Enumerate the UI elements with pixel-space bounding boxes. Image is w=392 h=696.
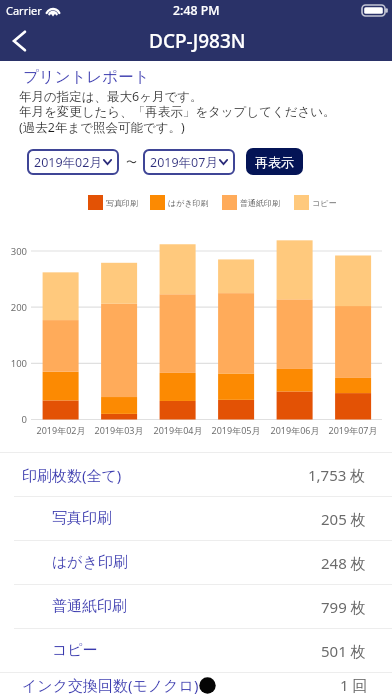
- staticText: 1,753 枚: [308, 465, 366, 485]
- staticText: DCP-J983N: [149, 28, 246, 54]
- button[interactable]: 2019年02月: [27, 149, 119, 175]
- button[interactable]: インク交換回数(モノクロ): [0, 673, 392, 696]
- button[interactable]: 普通紙印刷: [0, 585, 392, 628]
- staticText: コピー: [312, 198, 337, 208]
- staticText: 1 回: [340, 675, 368, 695]
- staticText: 2019年02月: [32, 424, 90, 436]
- staticText: 0: [0, 413, 27, 426]
- staticText: 2019年06月: [266, 424, 324, 436]
- button[interactable]: 再表示: [246, 148, 303, 175]
- staticText: はがき印刷: [168, 198, 209, 208]
- button[interactable]: コピー: [0, 629, 392, 672]
- staticText: 写真印刷: [52, 509, 112, 528]
- staticText: 100: [0, 357, 27, 370]
- staticText: 799 枚: [321, 597, 366, 617]
- button[interactable]: 印刷枚数(全て): [0, 453, 392, 496]
- staticText: 205 枚: [321, 509, 366, 529]
- staticText: 年月の指定は、最大6ヶ月です。 年月を変更したら、「再表示」をタップしてください…: [19, 88, 336, 135]
- staticText: 501 枚: [321, 641, 366, 661]
- button[interactable]: Back: [0, 20, 38, 61]
- staticText: 2019年07月: [324, 424, 382, 436]
- staticText: 再表示: [255, 154, 294, 170]
- staticText: 印刷枚数(全て): [22, 465, 122, 485]
- staticText: 2019年07月: [150, 154, 218, 171]
- staticText: Carrier: [6, 3, 42, 18]
- staticText: 〜: [126, 155, 137, 169]
- staticText: プリントレポート: [23, 67, 150, 87]
- staticText: 2019年03月: [90, 424, 148, 436]
- staticText: コピー: [52, 641, 98, 660]
- button[interactable]: 写真印刷: [0, 497, 392, 540]
- staticText: 248 枚: [321, 553, 366, 573]
- staticText: 普通紙印刷: [52, 597, 127, 616]
- staticText: 300: [0, 245, 27, 258]
- staticText: 写真印刷: [106, 198, 138, 208]
- staticText: はがき印刷: [52, 553, 129, 572]
- staticText: 200: [0, 301, 27, 314]
- staticText: 2019年02月: [34, 154, 102, 171]
- button[interactable]: はがき印刷: [0, 541, 392, 584]
- staticText: インク交換回数(モノクロ): [22, 675, 199, 695]
- staticText: 2:48 PM: [173, 2, 220, 19]
- button[interactable]: 2019年07月: [143, 149, 235, 175]
- staticText: 2019年05月: [207, 424, 265, 436]
- staticText: 普通紙印刷: [240, 198, 280, 208]
- staticText: 2019年04月: [149, 424, 207, 436]
